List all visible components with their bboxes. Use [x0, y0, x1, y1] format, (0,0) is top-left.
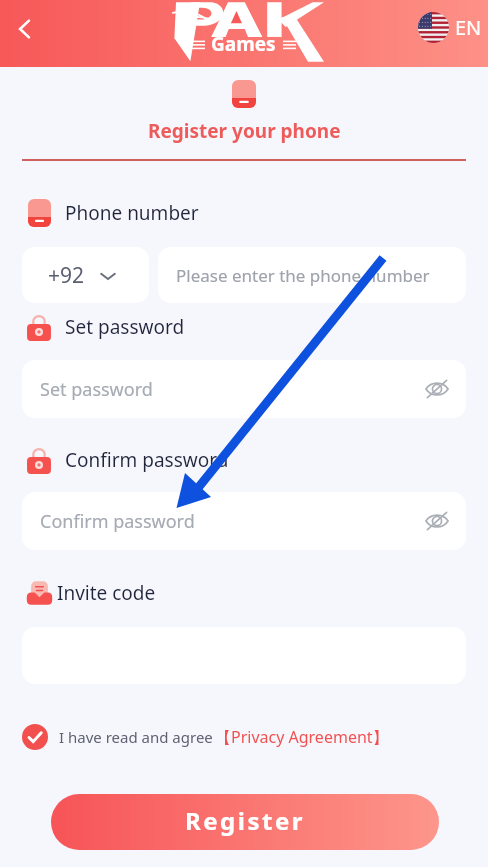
staticText: Register	[185, 804, 305, 837]
button[interactable]: EN	[418, 12, 482, 43]
staticText: Set password	[65, 314, 185, 340]
staticText: Please enter the phone number	[176, 264, 430, 287]
button[interactable]: +92	[22, 247, 149, 303]
staticText: 【Privacy Agreement】	[215, 726, 389, 748]
staticText: EN	[455, 14, 482, 41]
button[interactable]: I have read and agree	[22, 724, 389, 750]
staticText: Confirm password	[65, 447, 229, 473]
button[interactable]: Please enter the phone number	[158, 247, 466, 303]
button[interactable]: Confirm password	[22, 492, 466, 550]
staticText: Invite code	[57, 580, 156, 606]
staticText: Games	[211, 31, 276, 57]
button[interactable]: Show password	[420, 504, 454, 538]
staticText: I have read and agree	[59, 727, 213, 747]
staticText: +92	[48, 261, 85, 290]
staticText: Register your phone	[148, 118, 341, 144]
button[interactable]: Show password	[420, 372, 454, 406]
staticText: Confirm password	[40, 509, 195, 534]
button[interactable]: Back	[2, 7, 46, 51]
button[interactable]: Set password	[22, 360, 466, 418]
staticText: Phone number	[65, 200, 199, 226]
button[interactable]: Register	[51, 794, 439, 850]
staticText: Set password	[40, 377, 153, 402]
